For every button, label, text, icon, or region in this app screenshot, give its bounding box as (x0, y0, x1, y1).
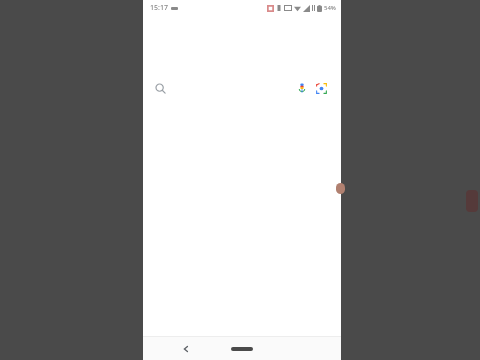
button[interactable]: Google Lens (313, 80, 329, 96)
button[interactable]: Back (177, 340, 195, 358)
staticText: 54% (324, 4, 336, 12)
button[interactable]: Home (229, 344, 255, 354)
staticText: 15:17 (150, 3, 168, 13)
button[interactable]: Voice search (294, 80, 310, 96)
button[interactable]: Voice search (148, 76, 336, 100)
